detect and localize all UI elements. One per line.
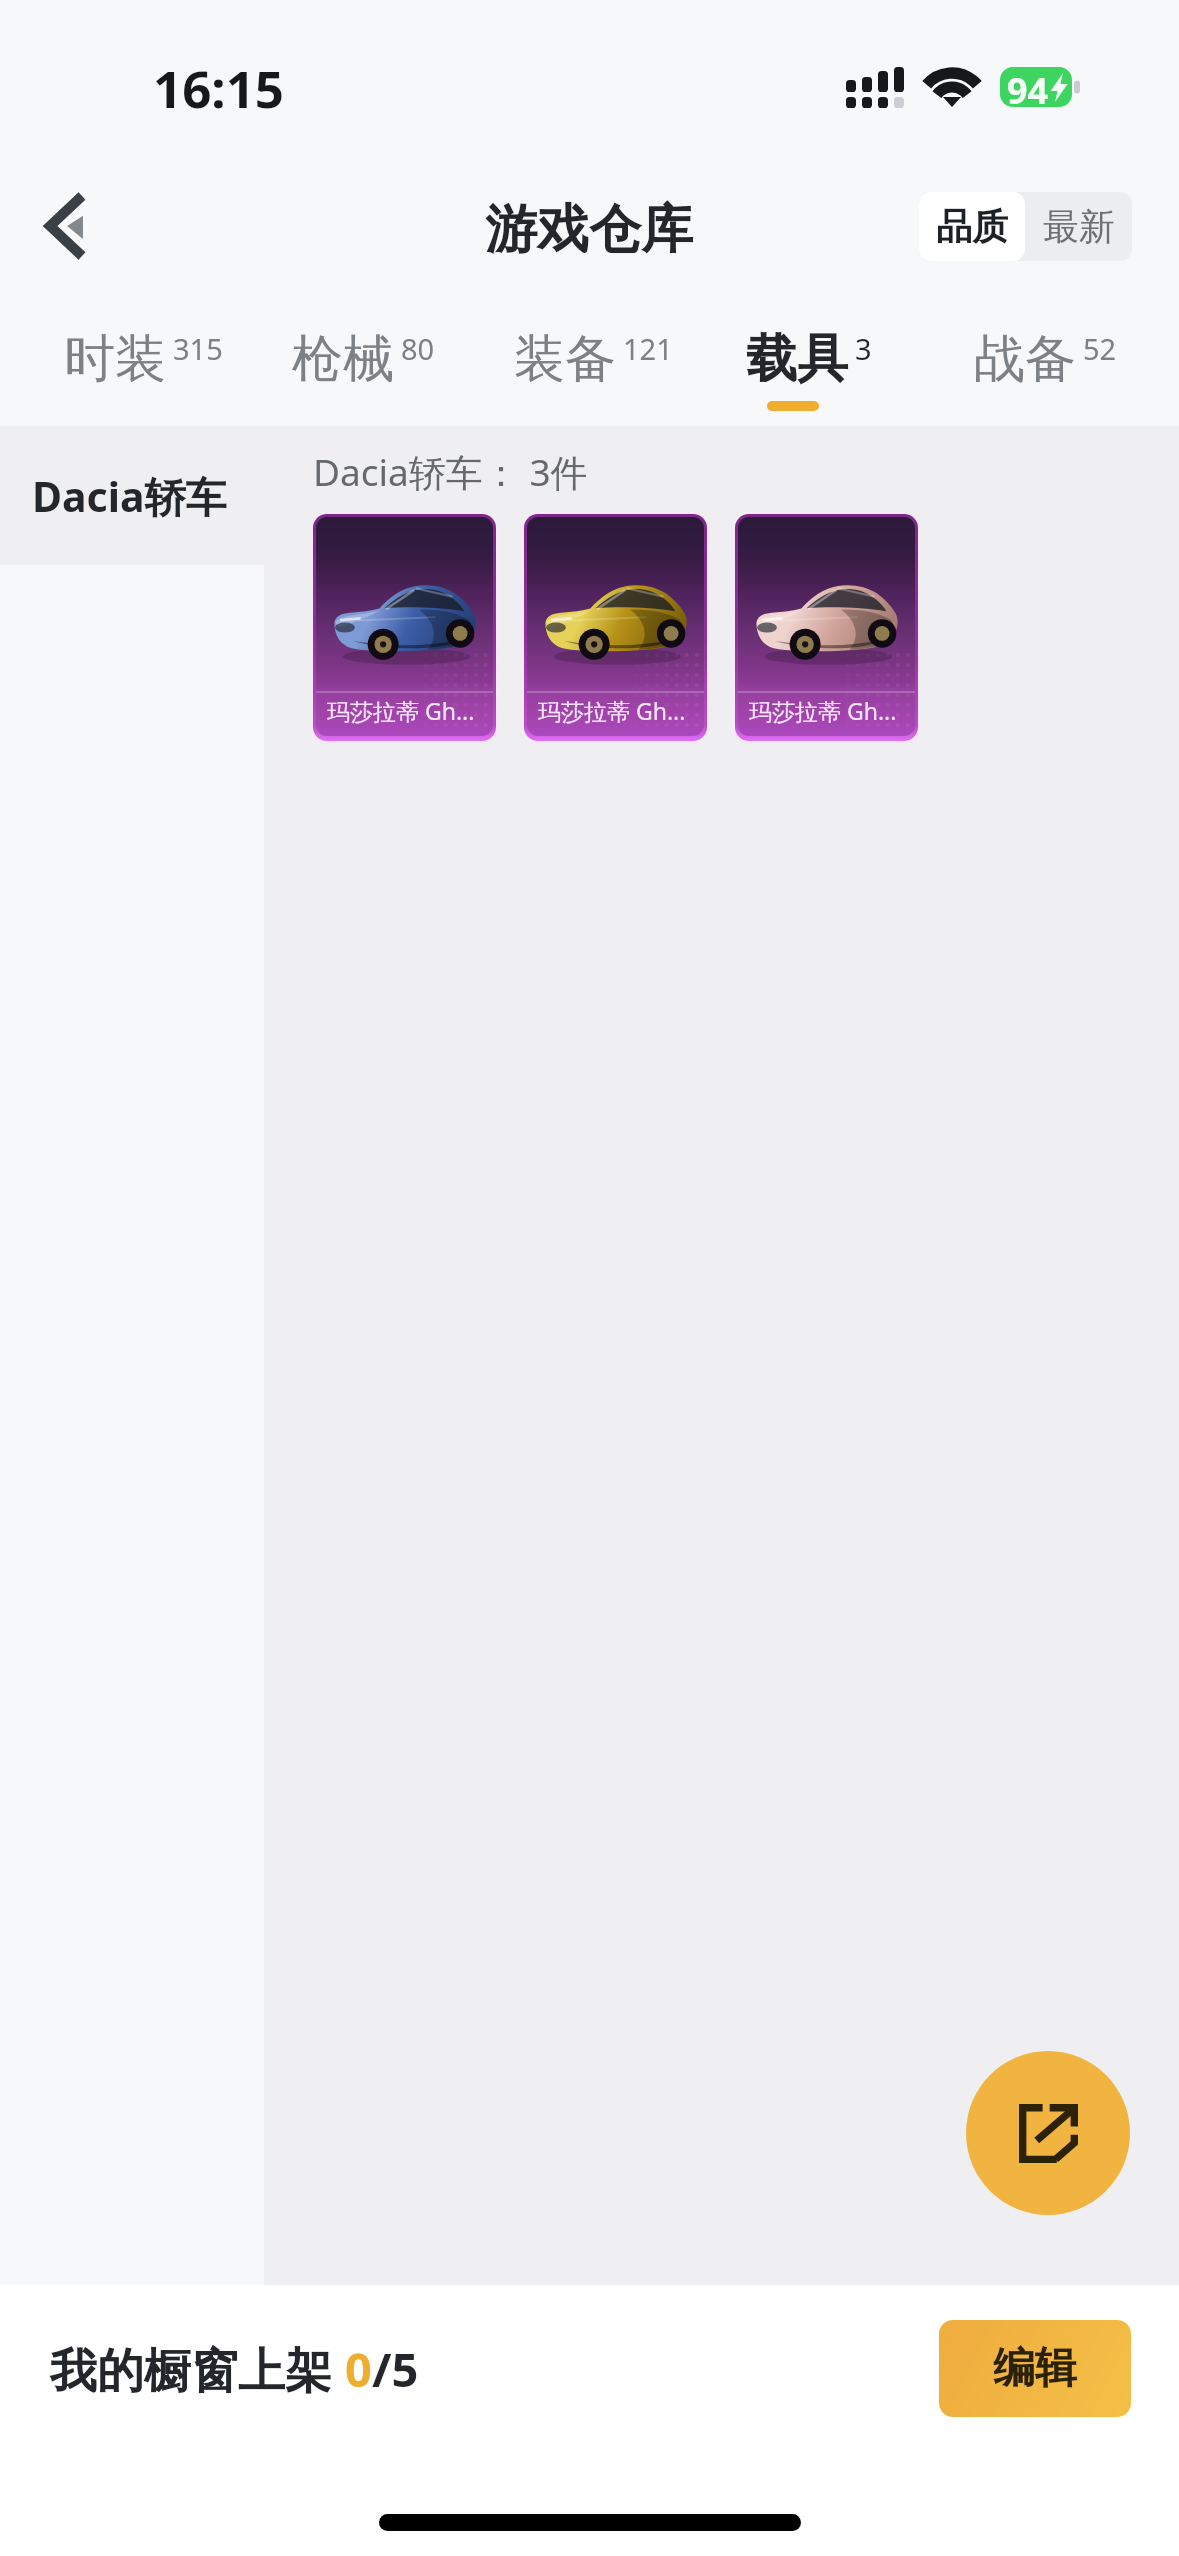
staticText: 3	[855, 329, 872, 368]
staticText: 最新	[1043, 204, 1115, 249]
button[interactable]: 玛莎拉蒂 Gh...	[311, 512, 498, 743]
staticText: 玛莎拉蒂 Gh...	[749, 695, 915, 726]
staticText: 游戏仓库	[485, 197, 693, 263]
button[interactable]: 时装	[34, 300, 242, 426]
staticText: 编辑	[993, 2342, 1077, 2395]
staticText: 0	[345, 2337, 372, 2401]
staticText: Dacia轿车： 3件	[313, 446, 588, 497]
staticText: 94	[1007, 66, 1049, 106]
staticText: 枪械	[292, 327, 394, 391]
staticText: Dacia轿车	[32, 468, 227, 524]
staticText: /5	[372, 2337, 419, 2401]
button[interactable]: Open external link	[966, 2051, 1130, 2215]
button[interactable]: 玛莎拉蒂 Gh...	[733, 512, 920, 743]
button[interactable]: 枪械	[262, 300, 464, 426]
button[interactable]: 编辑	[939, 2320, 1131, 2417]
staticText: 我的橱窗上架	[50, 2337, 345, 2401]
staticText: 80	[401, 329, 435, 368]
staticText: 121	[623, 329, 673, 368]
button[interactable]: Back	[18, 180, 110, 272]
staticText: 战备	[974, 327, 1076, 391]
staticText: 装备	[514, 327, 616, 391]
staticText: 315	[173, 329, 223, 368]
button[interactable]: 玛莎拉蒂 Gh...	[522, 512, 709, 743]
button[interactable]: 战备	[944, 300, 1134, 426]
button[interactable]: 载具	[716, 300, 924, 426]
staticText: 52	[1083, 329, 1117, 368]
button[interactable]: 装备	[484, 300, 696, 426]
staticText: 载具	[746, 327, 848, 391]
staticText: 玛莎拉蒂 Gh...	[538, 695, 704, 726]
staticText: 16:15	[153, 53, 285, 122]
button[interactable]: 最新	[1025, 192, 1132, 261]
staticText: 品质	[936, 204, 1008, 249]
button[interactable]: 品质	[919, 192, 1025, 261]
staticText: 时装	[64, 327, 166, 391]
button[interactable]: Dacia轿车	[0, 426, 264, 565]
staticText: 玛莎拉蒂 Gh...	[327, 695, 493, 726]
